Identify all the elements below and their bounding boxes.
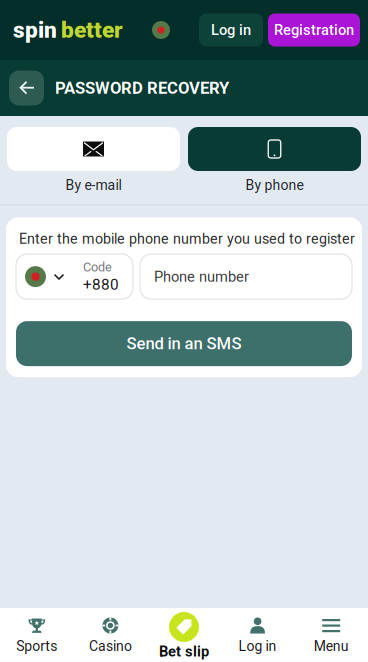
button[interactable]: Casino bbox=[74, 608, 147, 662]
staticText: spin bbox=[13, 17, 57, 43]
staticText: Bet slip bbox=[159, 643, 209, 660]
button[interactable]: Country code +880 bbox=[16, 254, 133, 299]
staticText: Sports bbox=[16, 638, 57, 654]
staticText: Phone number bbox=[154, 268, 249, 285]
staticText: Registration bbox=[274, 21, 354, 39]
button[interactable]: spinbetter home bbox=[13, 17, 123, 43]
button[interactable]: Menu bbox=[294, 608, 368, 662]
button[interactable]: Registration bbox=[268, 13, 360, 46]
staticText: Enter the mobile phone number you used t… bbox=[19, 230, 355, 247]
staticText: By phone bbox=[245, 177, 303, 193]
button[interactable]: By e-mail bbox=[7, 127, 180, 193]
staticText: +880 bbox=[83, 276, 119, 294]
staticText: Menu bbox=[314, 638, 349, 654]
button[interactable]: Log in bbox=[221, 608, 294, 662]
staticText: PASSWORD RECOVERY bbox=[55, 78, 229, 98]
staticText: Code bbox=[83, 260, 112, 274]
button[interactable]: Log in bbox=[199, 13, 263, 46]
staticText: better bbox=[61, 17, 123, 43]
button[interactable]: Back bbox=[9, 70, 44, 105]
button[interactable]: Sports bbox=[0, 608, 74, 662]
button[interactable]: Send in an SMS bbox=[16, 321, 352, 366]
staticText: Send in an SMS bbox=[126, 334, 241, 353]
staticText: Log in bbox=[239, 638, 277, 654]
button[interactable]: By phone bbox=[188, 127, 361, 193]
staticText: Casino bbox=[89, 638, 132, 654]
button[interactable]: Bet slip bbox=[147, 608, 221, 662]
button[interactable]: Phone number bbox=[140, 254, 352, 299]
staticText: Log in bbox=[211, 21, 251, 39]
button[interactable]: Language bbox=[147, 16, 175, 44]
staticText: By e-mail bbox=[65, 177, 121, 193]
